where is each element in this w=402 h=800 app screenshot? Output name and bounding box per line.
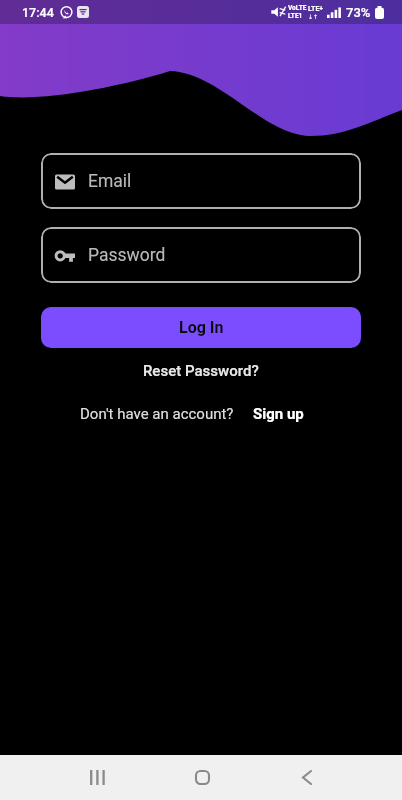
staticText: Don't have an account? — [80, 405, 234, 423]
button[interactable]: Home — [178, 755, 226, 800]
staticText: LTE1 — [288, 12, 303, 20]
button[interactable]: Back — [283, 755, 331, 800]
button[interactable]: Sign up — [253, 405, 304, 423]
staticText: Password — [88, 245, 166, 266]
button[interactable]: Password — [41, 227, 361, 283]
staticText: VoLTE — [288, 4, 307, 12]
button[interactable]: Email — [41, 153, 361, 209]
staticText: 17:44 — [22, 5, 54, 20]
staticText: Log In — [179, 318, 224, 337]
staticText: Reset Password? — [143, 362, 259, 380]
button[interactable]: Log In — [41, 307, 361, 348]
button[interactable]: Reset Password? — [135, 360, 267, 382]
staticText: Sign up — [253, 405, 304, 423]
button[interactable]: Recent apps — [74, 755, 122, 800]
staticText: LTE+ — [308, 5, 324, 13]
staticText: Email — [88, 171, 132, 192]
staticText: 73% — [346, 5, 371, 20]
staticText: ↓↑ — [308, 13, 319, 20]
